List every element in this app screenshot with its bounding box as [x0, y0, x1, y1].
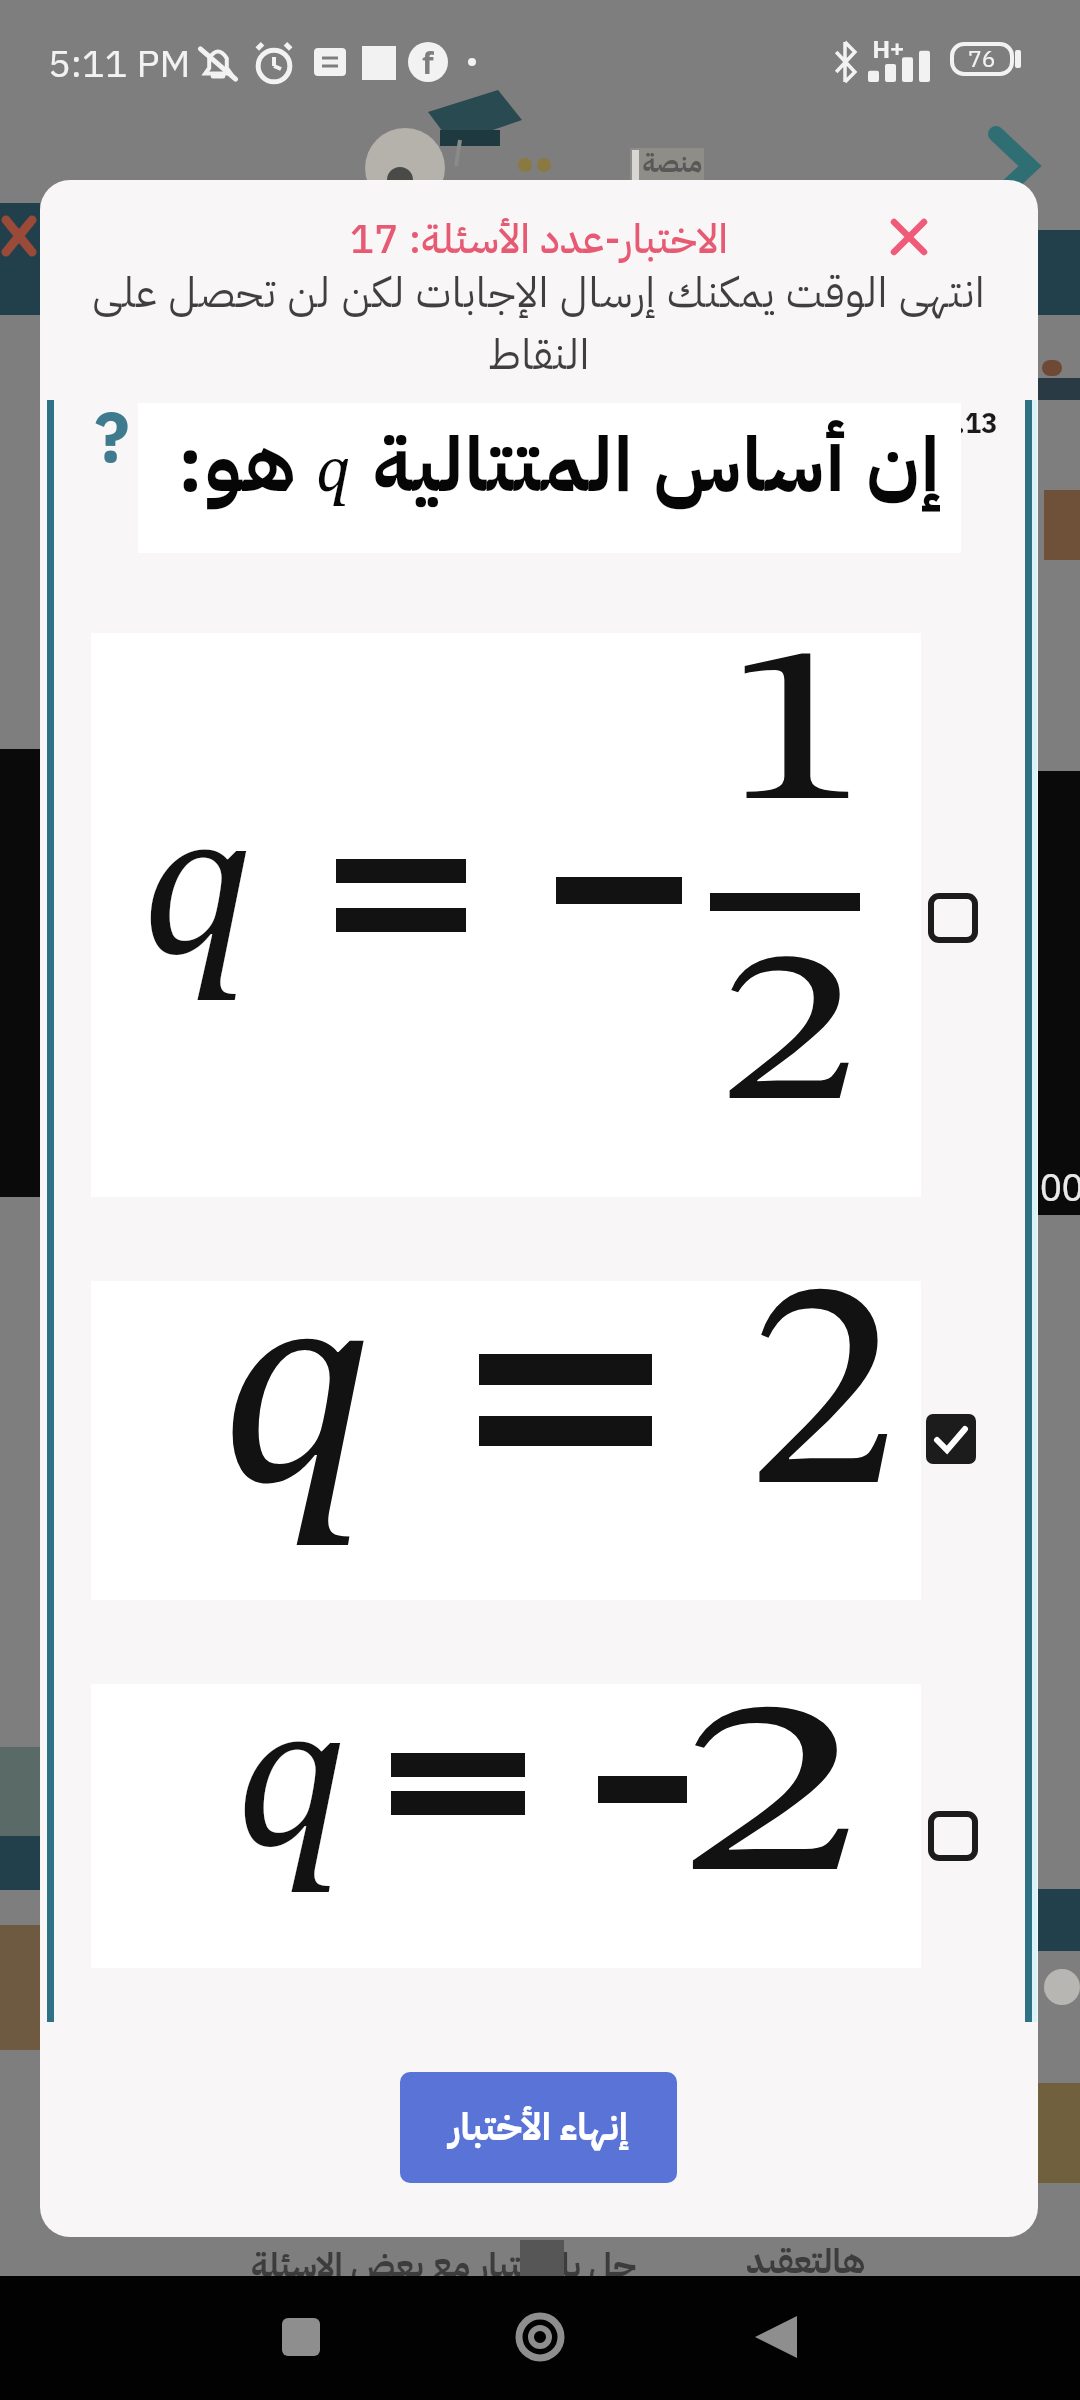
staticText: 5:11 PM	[48, 36, 191, 93]
staticText: 2	[679, 1677, 860, 1929]
staticText: إن أساس المتتالية q هو:	[177, 409, 941, 523]
staticText: 76	[968, 42, 996, 76]
staticText: منصة	[642, 144, 702, 178]
staticText: .13	[942, 404, 1012, 445]
button[interactable]	[928, 1811, 978, 1861]
button[interactable]: q	[91, 633, 921, 1197]
button[interactable]	[928, 893, 978, 943]
button[interactable]	[282, 2318, 320, 2356]
staticText: الاختبار-عدد الأسئلة: 17	[40, 210, 1038, 270]
staticText: إنهاء الأختبار	[449, 2099, 628, 2156]
staticText: f	[422, 42, 434, 82]
staticText: هالتعقيد	[745, 2236, 865, 2287]
staticText: 2	[748, 1253, 897, 1553]
staticText: 1	[723, 626, 869, 852]
button[interactable]	[515, 2312, 565, 2362]
staticText: q	[237, 1680, 349, 1895]
staticText: حل بالاختبار مع بعض الاسئلة	[250, 2240, 636, 2291]
button[interactable]: q	[91, 1281, 921, 1600]
staticText: 2	[719, 930, 857, 1150]
staticText: q	[222, 1255, 375, 1550]
button[interactable]: q	[91, 1684, 921, 1968]
button[interactable]: ?	[80, 386, 144, 491]
button[interactable]	[888, 216, 930, 258]
staticText: انتهى الوقت يمكنك إرسال الإجابات لكن لن …	[40, 261, 1038, 386]
staticText: H+	[872, 32, 905, 65]
button[interactable]: إنهاء الأختبار	[400, 2072, 677, 2183]
button[interactable]	[926, 1414, 976, 1464]
button[interactable]	[755, 2316, 797, 2358]
staticText: q	[143, 788, 255, 1003]
staticText: 00	[1040, 1160, 1080, 1212]
button[interactable]	[988, 128, 1040, 204]
